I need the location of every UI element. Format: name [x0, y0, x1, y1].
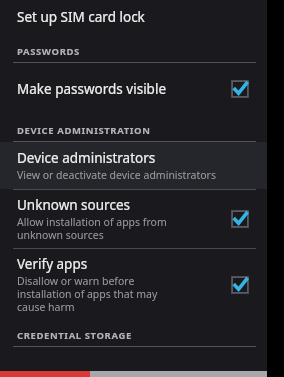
staticText: Verify apps: [17, 255, 88, 273]
button[interactable]: Make passwords visible: [0, 63, 267, 115]
button[interactable]: Unknown sources: [0, 190, 267, 248]
button[interactable]: Unknown sources checkbox: [225, 204, 255, 234]
staticText: Set up SIM card lock: [17, 8, 145, 26]
staticText: Unknown sources: [17, 196, 130, 214]
staticText: View or deactivate device administrators: [17, 168, 216, 182]
button[interactable]: Verify apps checkbox: [225, 270, 255, 300]
button[interactable]: Verify apps: [0, 249, 267, 320]
button[interactable]: Device administrators: [0, 142, 267, 189]
button[interactable]: Set up SIM card lock: [0, 0, 267, 36]
staticText: PASSWORDS: [17, 45, 80, 58]
staticText: Allow installation of apps from unknown …: [17, 215, 167, 242]
staticText: Disallow or warn before installation of …: [17, 274, 158, 314]
staticText: CREDENTIAL STORAGE: [17, 329, 132, 342]
staticText: Make passwords visible: [17, 80, 167, 98]
staticText: Device administrators: [17, 149, 156, 167]
staticText: DEVICE ADMINISTRATION: [17, 124, 151, 137]
button[interactable]: Make passwords visible checkbox: [225, 74, 255, 104]
